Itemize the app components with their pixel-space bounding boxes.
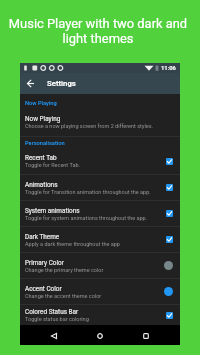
- staticText: Choose a now playing screen from 2 diffe…: [25, 123, 153, 129]
- staticText: Now Playing: [25, 115, 61, 123]
- staticText: Toggle for Transition animation througho…: [25, 189, 151, 195]
- staticText: Apply a dark theme throughout the app: [25, 241, 120, 247]
- staticText: 11:06: [161, 65, 176, 72]
- staticText: Primary Color: [25, 259, 64, 267]
- button[interactable]: Back: [20, 73, 40, 94]
- staticText: System animations: [25, 207, 80, 215]
- staticText: Recent Tab: [25, 154, 57, 162]
- button[interactable]: Animations: [20, 174, 180, 200]
- button[interactable]: Now Playing: [20, 115, 180, 140]
- staticText: Toggle for Recent Tab.: [25, 162, 80, 168]
- button[interactable]: Back: [41, 325, 67, 345]
- button[interactable]: Home: [87, 325, 113, 345]
- staticText: Change the primary theme color: [25, 267, 104, 273]
- button[interactable]: Accent Color: [20, 278, 180, 304]
- button[interactable]: Primary Color: [20, 252, 180, 278]
- staticText: Personalisation: [25, 140, 65, 147]
- staticText: Animations: [25, 181, 58, 189]
- staticText: Toggle for system animations throughout …: [25, 215, 148, 221]
- staticText: Now Playing: [25, 100, 57, 107]
- staticText: Music Player with two dark and light the…: [0, 16, 198, 46]
- staticText: Change the accent theme color: [25, 293, 102, 299]
- button[interactable]: Recent Tab: [20, 148, 180, 174]
- staticText: Settings: [47, 79, 76, 88]
- button[interactable]: Colored Status Bar: [20, 304, 180, 325]
- staticText: Dark Theme: [25, 233, 60, 241]
- staticText: Accent Color: [25, 285, 62, 293]
- button[interactable]: Recents: [133, 325, 159, 345]
- button[interactable]: Dark Theme: [20, 226, 180, 252]
- staticText: Colored Status Bar: [25, 308, 79, 316]
- staticText: Toggle status bar coloring: [25, 316, 89, 322]
- button[interactable]: System animations: [20, 200, 180, 226]
